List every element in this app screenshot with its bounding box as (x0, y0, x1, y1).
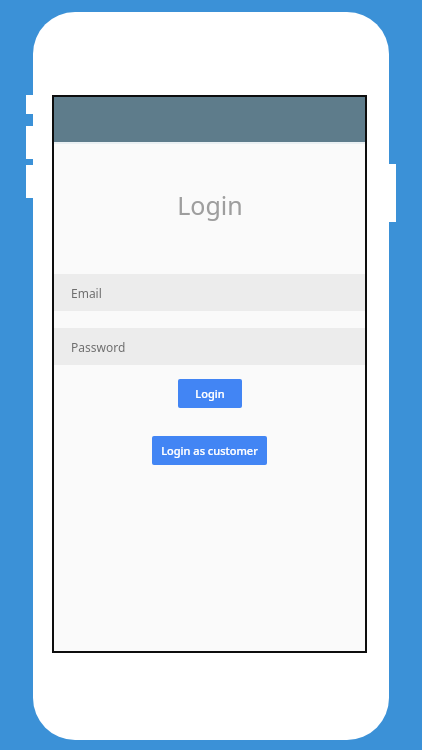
button[interactable]: Password (54, 328, 365, 365)
staticText: Login as customer (161, 443, 258, 458)
staticText: Login (177, 188, 243, 222)
staticText: Login (195, 386, 225, 401)
button[interactable]: Email (54, 274, 365, 311)
button[interactable]: Login as customer (152, 436, 267, 465)
staticText: Password (71, 339, 126, 355)
staticText: Email (71, 285, 102, 301)
button[interactable]: Login (178, 379, 242, 408)
